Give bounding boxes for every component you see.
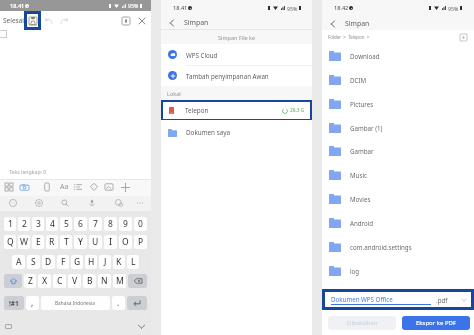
staticText: Z — [28, 275, 33, 287]
button[interactable]: U — [89, 235, 102, 249]
button[interactable]: Dokumen saya — [168, 121, 305, 144]
button[interactable]: Pictures — [329, 92, 467, 116]
button[interactable]: Download — [329, 44, 467, 68]
button[interactable]: Telepon — [169, 102, 305, 119]
button[interactable]: Enter — [127, 296, 147, 310]
button[interactable]: E — [32, 235, 44, 249]
button[interactable]: D — [42, 255, 55, 269]
staticText: Simpan — [345, 19, 370, 28]
button[interactable]: Voice — [85, 196, 99, 210]
button[interactable]: Space — [41, 296, 110, 310]
button[interactable]: Save — [27, 14, 38, 27]
staticText: Bahasa Indonesia — [55, 300, 96, 307]
button[interactable]: H — [85, 255, 97, 269]
button[interactable]: Back — [327, 18, 338, 29]
button[interactable]: 6 — [74, 217, 87, 231]
button[interactable]: Sticker — [112, 196, 126, 210]
button[interactable]: O — [119, 235, 132, 249]
button[interactable]: M — [113, 274, 126, 288]
button[interactable]: Music — [329, 163, 467, 187]
button[interactable]: Redo — [59, 11, 69, 30]
staticText: Telepon — [185, 106, 209, 115]
button[interactable]: Gambar — [329, 139, 467, 163]
button[interactable]: C — [53, 274, 66, 288]
button[interactable]: 9 — [119, 217, 132, 231]
button[interactable]: Back — [166, 17, 177, 28]
button[interactable]: S — [27, 255, 40, 269]
button[interactable]: Grid — [2, 180, 16, 194]
button[interactable]: P — [134, 235, 147, 249]
button[interactable]: Hide keyboard — [135, 320, 147, 332]
button[interactable]: Q — [4, 235, 16, 249]
button[interactable]: J — [99, 255, 111, 269]
button[interactable]: T — [60, 235, 72, 249]
button[interactable]: Undo — [44, 11, 54, 30]
button[interactable]: Shift — [4, 274, 22, 288]
button[interactable]: G — [71, 255, 83, 269]
button[interactable]: 1 — [4, 217, 16, 231]
button[interactable]: Camera — [17, 180, 31, 194]
button[interactable]: , — [26, 296, 39, 310]
staticText: 0 — [138, 218, 143, 230]
button[interactable]: log — [329, 259, 467, 283]
button[interactable]: B — [83, 274, 96, 288]
button[interactable]: Movies — [329, 187, 467, 211]
button[interactable]: 8 — [104, 217, 117, 231]
button[interactable]: 5 — [60, 217, 72, 231]
button[interactable]: Ekspor ke PDF — [402, 316, 470, 330]
button[interactable]: 2 — [18, 217, 30, 231]
button[interactable]: 0 — [134, 217, 147, 231]
button[interactable]: I — [104, 235, 117, 249]
staticText: , — [31, 297, 34, 309]
staticText: Gambar — [350, 147, 374, 155]
button[interactable]: Close — [136, 11, 147, 30]
button[interactable]: . — [112, 296, 125, 310]
button[interactable]: Y — [74, 235, 87, 249]
staticText: 95% — [287, 5, 298, 12]
staticText: 6 — [78, 218, 83, 230]
button[interactable]: K — [113, 255, 125, 269]
button[interactable]: Z — [24, 274, 36, 288]
button[interactable]: A — [12, 255, 25, 269]
button[interactable]: L — [127, 255, 139, 269]
button[interactable]: Search — [58, 196, 72, 210]
button[interactable]: N — [98, 274, 111, 288]
button[interactable]: Tambah penyimpanan Awan — [168, 65, 305, 86]
staticText: B — [87, 275, 93, 287]
button[interactable]: 4 — [46, 217, 58, 231]
staticText: C — [57, 275, 63, 287]
button[interactable]: WPS Cloud — [168, 44, 305, 65]
staticText: Download — [350, 52, 380, 60]
button[interactable]: Gambar (1) — [329, 116, 467, 140]
button[interactable]: W — [18, 235, 30, 249]
button[interactable]: New folder — [458, 32, 468, 42]
staticText: N — [101, 275, 108, 287]
button[interactable]: R — [46, 235, 58, 249]
button[interactable]: File name — [331, 295, 431, 305]
button[interactable]: View mode — [120, 11, 131, 30]
button[interactable]: 3 — [32, 217, 44, 231]
button[interactable]: Insert image — [102, 180, 116, 194]
button[interactable]: com.android.settings — [329, 235, 467, 259]
button[interactable]: Add — [118, 180, 132, 194]
button[interactable]: X — [38, 274, 51, 288]
button[interactable]: Emoji — [6, 196, 20, 210]
button[interactable]: Change format — [457, 292, 471, 307]
button[interactable]: 7 — [89, 217, 102, 231]
button[interactable]: Android — [329, 211, 467, 235]
staticText: WPS Cloud — [186, 51, 218, 59]
button[interactable]: Tag — [87, 180, 101, 194]
button[interactable]: Backspace — [128, 274, 147, 288]
button[interactable]: DCIM — [329, 68, 467, 92]
button[interactable]: Page — [40, 180, 54, 194]
button[interactable]: V — [68, 274, 81, 288]
staticText: Dokumen saya — [186, 128, 230, 137]
button[interactable]: Text style — [57, 180, 71, 194]
button[interactable]: Settings — [32, 196, 46, 210]
button[interactable]: List — [71, 180, 85, 194]
button[interactable]: Dibatalkan — [328, 316, 396, 330]
button[interactable]: Symbols — [4, 296, 24, 310]
button[interactable]: F — [57, 255, 69, 269]
staticText: 18.41 — [10, 2, 25, 10]
button[interactable]: More — [133, 196, 147, 210]
